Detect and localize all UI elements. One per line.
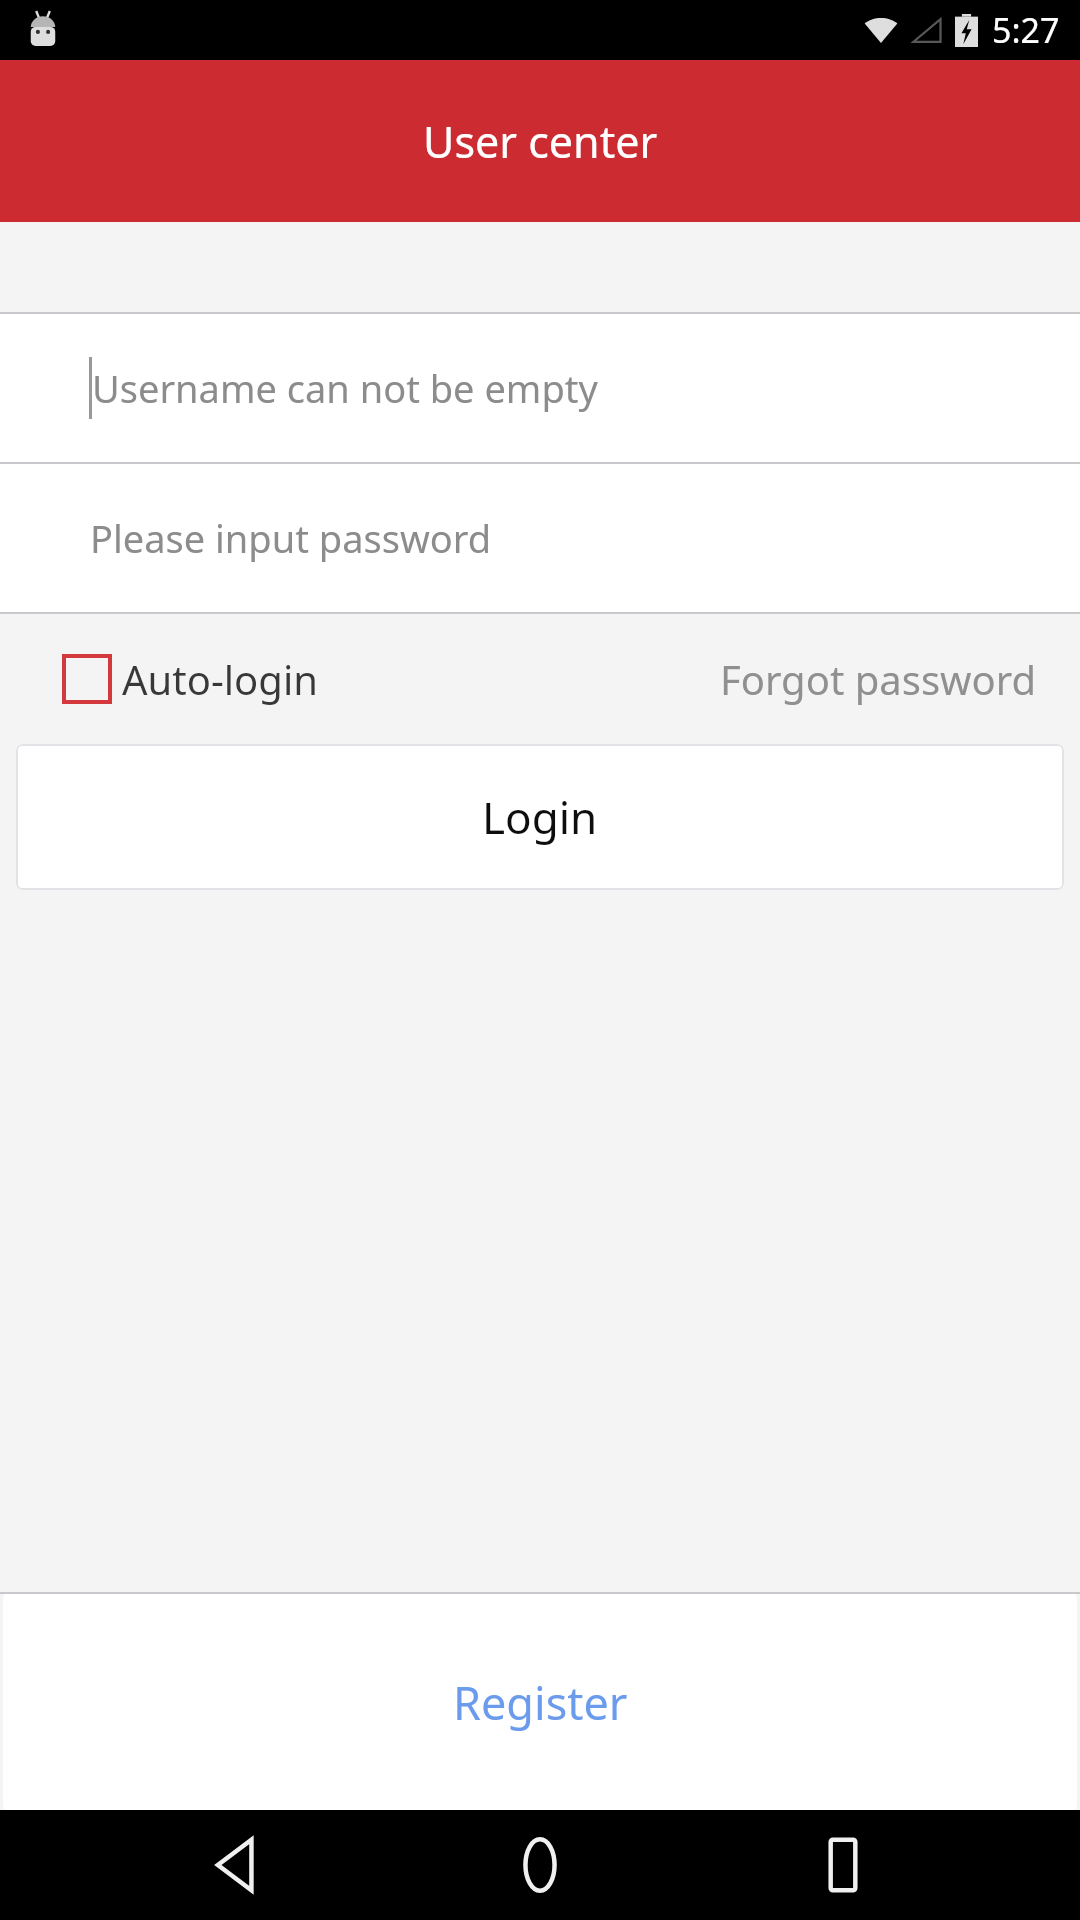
button[interactable]: Forgot password	[720, 652, 1037, 706]
staticText: Register	[453, 1672, 628, 1733]
button[interactable]: Auto-login	[62, 652, 318, 706]
staticText: Username can not be empty	[92, 362, 598, 414]
staticText: User center	[423, 112, 658, 171]
staticText: Auto-login	[122, 652, 318, 706]
button[interactable]: Username can not be empty	[0, 314, 1080, 462]
button[interactable]: Back	[173, 1810, 303, 1920]
staticText: 5:27	[992, 7, 1060, 53]
button[interactable]: Register	[3, 1594, 1077, 1810]
staticText: Forgot password	[720, 652, 1037, 706]
button[interactable]: Home	[475, 1810, 605, 1920]
button[interactable]: Please input password	[0, 464, 1080, 612]
staticText: Login	[482, 787, 598, 847]
button[interactable]: Login	[16, 744, 1064, 890]
staticText: Please input password	[90, 512, 492, 564]
button[interactable]: Recent apps	[778, 1810, 908, 1920]
